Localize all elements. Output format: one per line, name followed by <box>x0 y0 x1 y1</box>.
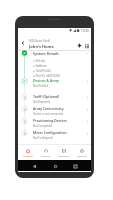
staticText: John's Home <box>29 44 54 49</box>
staticText: Address <box>36 64 47 68</box>
button[interactable]: Settings <box>73 144 91 160</box>
button[interactable]: Menu <box>83 42 90 49</box>
button[interactable]: Locate <box>76 42 83 49</box>
staticText: Devices & Array <box>33 78 59 83</box>
button[interactable]: Devices & Array <box>31 78 85 88</box>
staticText: Not Configured <box>33 136 53 140</box>
staticText: Details <box>36 59 45 63</box>
staticText: 6 <box>24 132 26 136</box>
staticText: 10:30 <box>81 29 89 33</box>
button[interactable]: Back <box>19 39 26 46</box>
staticText: System Details <box>33 51 59 56</box>
button[interactable]: Support <box>37 144 55 160</box>
staticText: Systems <box>23 154 33 157</box>
button[interactable]: Home <box>51 162 59 170</box>
staticText: Tariff (Optional) <box>33 94 59 99</box>
staticText: 4 <box>24 108 26 112</box>
staticText: Site ID: 440010281 <box>36 74 61 78</box>
button[interactable]: Recents <box>71 162 79 170</box>
staticText: Meter Configuration <box>33 130 67 135</box>
button[interactable]: Provisioning Devices <box>31 118 85 128</box>
staticText: Not Completed <box>33 124 53 128</box>
button[interactable]: Tariff (Optional) <box>31 94 85 104</box>
staticText: Grid Profile <box>36 69 51 73</box>
staticText: Not Verified <box>33 84 49 88</box>
button[interactable]: Feedback <box>55 144 73 160</box>
staticText: 5 <box>24 120 26 124</box>
staticText: Provisioning Devices <box>33 118 67 123</box>
button[interactable]: Systems <box>18 144 37 160</box>
button[interactable]: Array Connectivity <box>31 106 85 116</box>
staticText: Array Connectivity <box>33 106 64 111</box>
staticText: Device is not connected <box>33 112 63 116</box>
staticText: Feedback <box>58 154 70 157</box>
staticText: ENG (Asset Book) <box>29 39 50 43</box>
staticText: 3 <box>24 96 26 100</box>
staticText: Not Required <box>33 100 50 104</box>
button[interactable]: System Details <box>31 49 87 57</box>
staticText: Settings <box>77 154 87 157</box>
button[interactable]: Back <box>30 162 38 170</box>
button[interactable]: Meter Configuration <box>31 130 85 140</box>
staticText: Support <box>41 154 51 157</box>
